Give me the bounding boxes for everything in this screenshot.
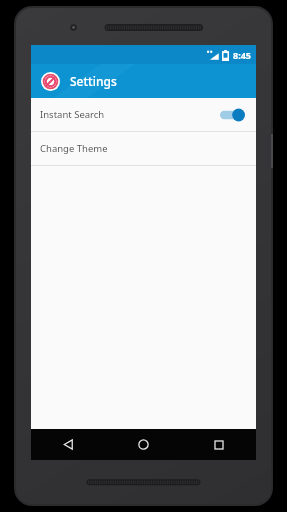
- staticText: Settings: [70, 73, 117, 89]
- staticText: Instant Search: [40, 108, 105, 121]
- button[interactable]: Recent apps: [181, 429, 256, 460]
- button[interactable]: Instant Search: [31, 98, 256, 131]
- button[interactable]: Change Theme: [31, 132, 256, 165]
- button[interactable]: Instant Search toggle: [220, 107, 246, 123]
- button[interactable]: App icon: [41, 72, 60, 91]
- button[interactable]: Home: [106, 429, 181, 460]
- staticText: Change Theme: [40, 142, 108, 155]
- button[interactable]: Back: [31, 429, 106, 460]
- staticText: 8:45: [233, 49, 251, 61]
